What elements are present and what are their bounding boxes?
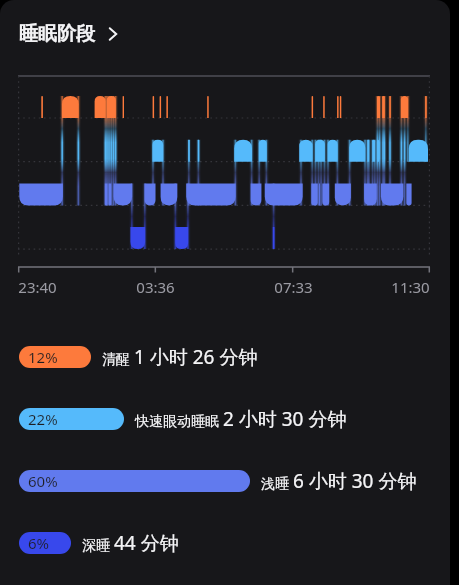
- staticText: 6%: [28, 533, 50, 553]
- staticText: 23:40: [18, 277, 57, 295]
- staticText: 03:36: [136, 277, 175, 295]
- staticText: 22%: [28, 409, 58, 429]
- staticText: 2 小时 30 分钟: [223, 406, 347, 432]
- staticText: 12%: [28, 347, 58, 367]
- button[interactable]: 22%: [0, 398, 450, 440]
- button[interactable]: 睡眠阶段: [19, 22, 122, 46]
- staticText: 清醒: [102, 351, 130, 369]
- staticText: 07:33: [274, 277, 313, 295]
- button[interactable]: 6%: [0, 522, 450, 564]
- button[interactable]: 60%: [0, 460, 450, 502]
- button[interactable]: 12%: [0, 336, 450, 378]
- staticText: 1 小时 26 分钟: [134, 344, 258, 370]
- staticText: 快速眼动睡眠: [135, 413, 219, 431]
- staticText: 11:30: [391, 277, 430, 295]
- staticText: 睡眠阶段: [19, 22, 95, 46]
- staticText: 60%: [28, 471, 58, 491]
- staticText: 44 分钟: [114, 530, 179, 556]
- staticText: 6 小时 30 分钟: [293, 468, 417, 494]
- staticText: 浅睡: [261, 475, 289, 493]
- staticText: 深睡: [82, 537, 110, 555]
